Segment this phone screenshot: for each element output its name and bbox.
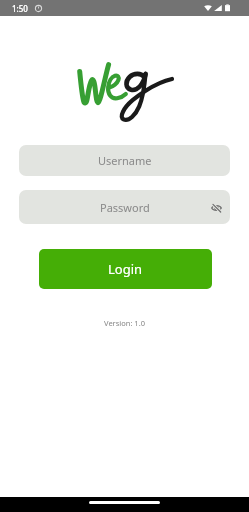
staticText: 1:50	[12, 3, 28, 14]
staticText: Login	[108, 260, 143, 278]
button[interactable]: Show password	[208, 199, 225, 216]
button[interactable]: Password	[19, 190, 230, 224]
staticText: Version: 1.0	[0, 318, 249, 328]
button[interactable]: Username	[19, 145, 230, 176]
staticText: Username	[98, 153, 152, 168]
button[interactable]: Login	[39, 249, 212, 289]
staticText: Password	[100, 200, 150, 215]
